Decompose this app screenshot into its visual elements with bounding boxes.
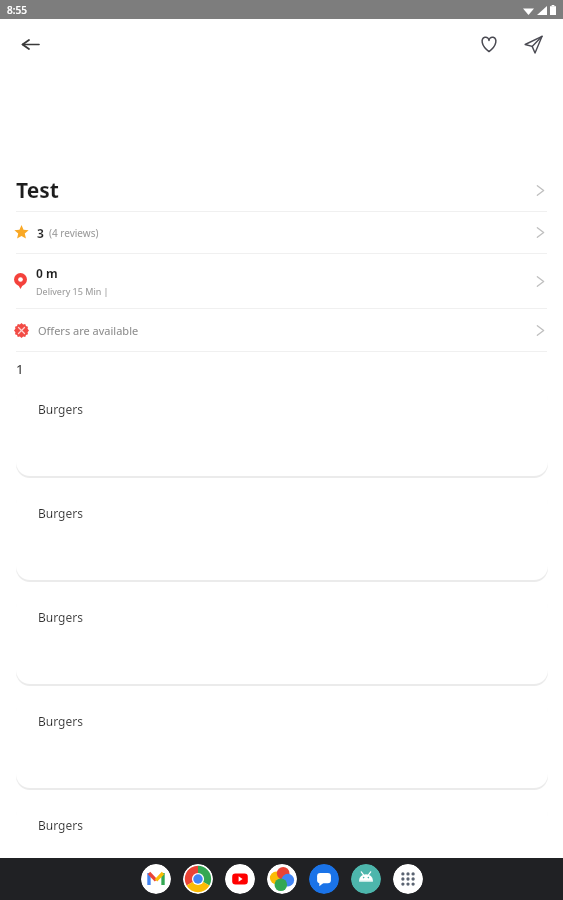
button[interactable]: Burgers <box>16 490 548 580</box>
button[interactable]: Gmail <box>141 864 171 894</box>
button[interactable]: Offers are available <box>0 309 563 351</box>
button[interactable]: Back <box>13 27 47 61</box>
button[interactable]: Favorite <box>473 28 505 60</box>
button[interactable]: Share <box>517 28 549 60</box>
staticText: (4 reviews) <box>49 226 99 240</box>
staticText: 3 <box>37 225 44 241</box>
staticText: Burgers <box>38 401 83 417</box>
button[interactable]: Chrome <box>183 864 213 894</box>
staticText: 8:55 <box>7 3 27 17</box>
staticText: Delivery 15 Min | <box>36 285 109 297</box>
staticText: 0 m <box>36 265 58 281</box>
staticText: 1 <box>16 360 24 378</box>
button[interactable]: Burgers <box>16 802 548 892</box>
staticText: Offers are available <box>38 323 139 338</box>
button[interactable]: Burgers <box>16 594 548 684</box>
staticText: Burgers <box>38 505 83 521</box>
button[interactable]: Messages <box>309 864 339 894</box>
staticText: Test <box>16 176 59 205</box>
button[interactable]: 3 <box>0 212 563 253</box>
button[interactable]: YouTube <box>225 864 255 894</box>
button[interactable]: Photos <box>267 864 297 894</box>
staticText: Burgers <box>38 713 83 729</box>
button[interactable]: Test <box>0 169 563 211</box>
button[interactable]: Burgers <box>16 386 548 476</box>
button[interactable]: 0 m <box>0 254 563 308</box>
button[interactable]: All apps <box>393 864 423 894</box>
staticText: Burgers <box>38 817 83 833</box>
button[interactable]: Burgers <box>16 698 548 788</box>
button[interactable]: Emulator <box>351 864 381 894</box>
staticText: Burgers <box>38 609 83 625</box>
